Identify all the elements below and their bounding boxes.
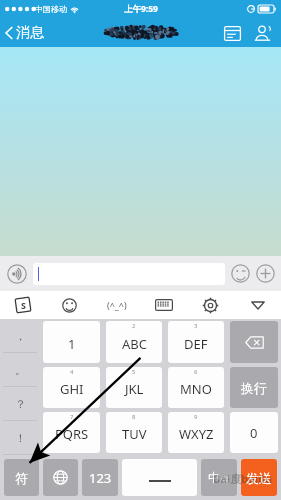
staticText: 。 <box>15 363 26 377</box>
button[interactable]: Voice input <box>5 262 29 286</box>
button[interactable]: 中 <box>201 459 237 496</box>
button[interactable]: 6 <box>168 367 224 408</box>
staticText: 7 <box>70 413 74 421</box>
staticText: 9 <box>194 413 198 421</box>
staticText: 符 <box>15 470 28 486</box>
staticText: JKL <box>125 380 144 398</box>
staticText: 8 <box>132 413 136 421</box>
staticText: 5 <box>132 368 136 376</box>
button[interactable]: 2 <box>106 321 162 363</box>
staticText: 1 <box>68 335 76 353</box>
button[interactable]: Space <box>122 459 197 496</box>
button[interactable]: 7 <box>43 412 100 453</box>
staticText: PQRS <box>55 425 89 443</box>
staticText: WXYZ <box>179 425 214 443</box>
button[interactable]: 换行 <box>230 367 278 408</box>
staticText: 6 <box>194 368 198 376</box>
button[interactable]: Hide keyboard <box>234 291 281 319</box>
staticText: MNO <box>180 380 212 398</box>
staticText: ！ <box>15 431 26 445</box>
button[interactable]: Messages list <box>220 22 245 45</box>
staticText: 0 <box>250 424 258 442</box>
button[interactable]: (^_^) <box>93 291 140 319</box>
staticText: 中 <box>208 470 220 485</box>
staticText: TUV <box>122 425 147 443</box>
staticText: 发送 <box>246 470 272 486</box>
button[interactable]: Emoji <box>46 291 93 319</box>
button[interactable]: 3 <box>168 321 224 363</box>
button[interactable]: More <box>255 263 276 284</box>
staticText: GHI <box>60 380 84 398</box>
button[interactable]: 9 <box>168 412 224 453</box>
button[interactable]: ？ <box>3 387 37 421</box>
staticText: 4 <box>70 368 74 376</box>
button[interactable]: 0 <box>230 412 278 453</box>
button[interactable]: Contacts <box>250 21 275 45</box>
button[interactable]: Sogou input <box>0 291 46 319</box>
staticText: ？ <box>15 397 26 411</box>
staticText: 2 <box>132 322 136 330</box>
button[interactable]: Switch language <box>43 459 78 496</box>
button[interactable]: 123 <box>82 459 118 496</box>
staticText: S <box>21 299 26 311</box>
staticText: ， <box>15 329 26 343</box>
staticText: 中国移动 <box>35 4 67 14</box>
staticText: (^_^) <box>107 299 127 311</box>
button[interactable]: 消息 <box>0 20 50 46</box>
staticText: 3 <box>194 322 198 330</box>
button[interactable]: 。 <box>3 353 37 387</box>
button[interactable]: 符 <box>4 459 39 496</box>
staticText: 消息 <box>16 24 44 42</box>
button[interactable]: Delete <box>230 321 278 363</box>
staticText: 换行 <box>241 380 267 396</box>
button[interactable]: 4 <box>43 367 100 408</box>
button[interactable]: Emoji <box>230 263 251 284</box>
button[interactable]: 1 <box>43 321 100 363</box>
staticText: DEF <box>184 335 208 353</box>
staticText: ABC <box>122 335 147 353</box>
staticText: Bai度baidu <box>213 471 273 486</box>
button[interactable]: Settings <box>187 291 234 319</box>
button[interactable]: ， <box>3 319 37 353</box>
button[interactable]: ！ <box>3 421 37 455</box>
staticText: /英 <box>220 475 230 485</box>
button[interactable]: 5 <box>106 367 162 408</box>
button[interactable]: 8 <box>106 412 162 453</box>
staticText: 123 <box>89 469 112 487</box>
button[interactable]: Keyboard layout <box>140 291 187 319</box>
button[interactable] <box>33 263 225 285</box>
staticText: 上午9:59 <box>124 3 158 15</box>
button[interactable]: 发送 <box>241 459 277 496</box>
